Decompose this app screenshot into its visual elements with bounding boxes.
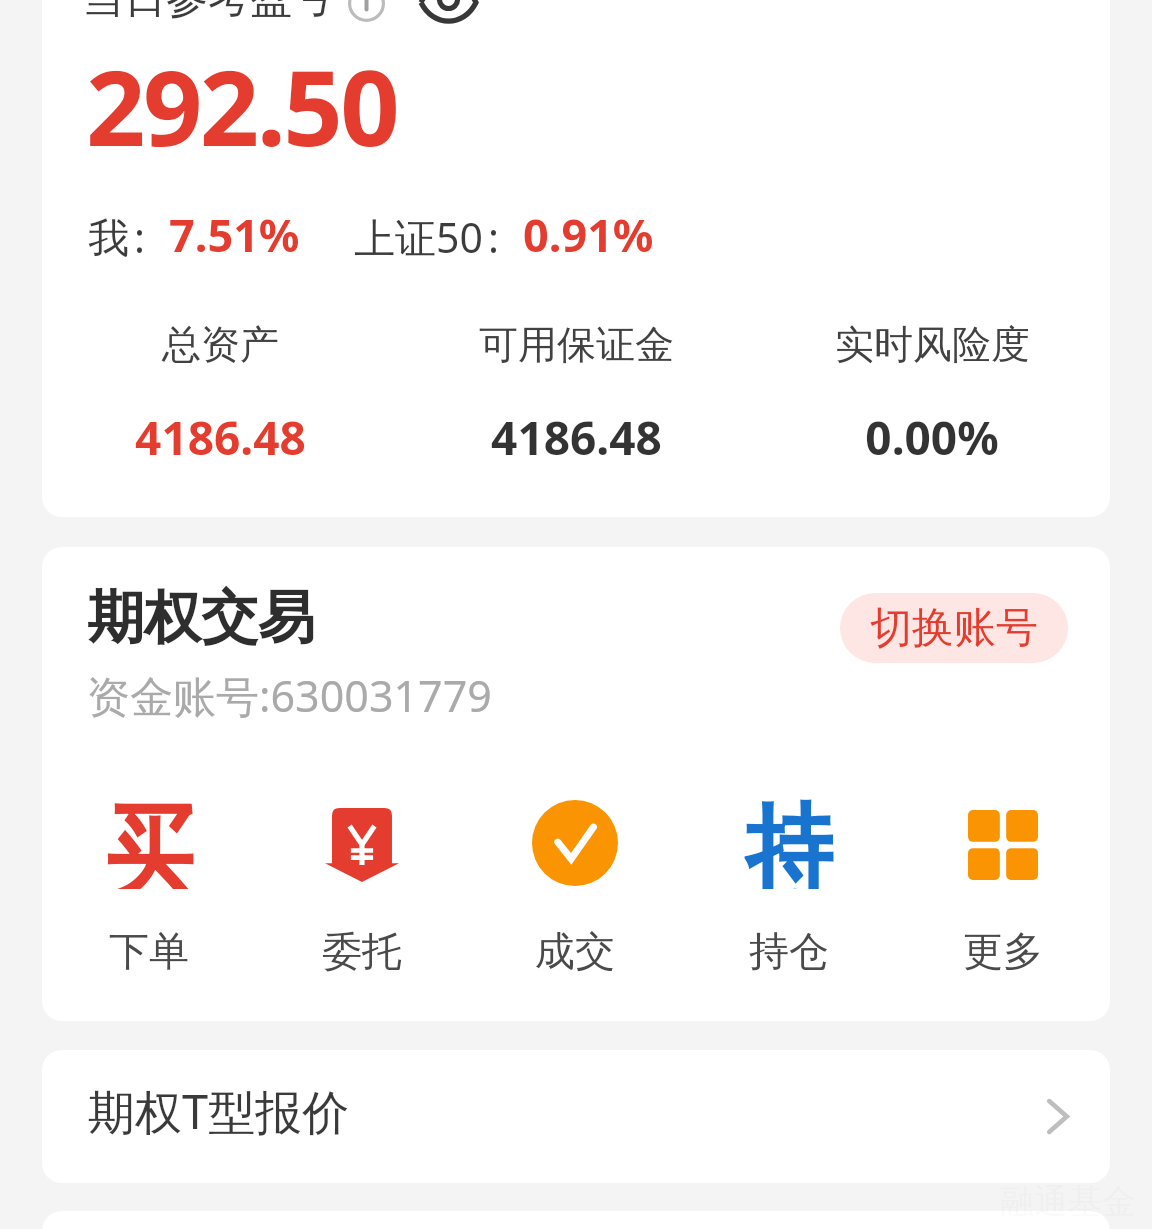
staticText: 总资产	[162, 320, 279, 369]
staticText: 下单	[109, 926, 189, 976]
staticText: 0.00%	[865, 406, 999, 469]
button[interactable]: Info	[336, 0, 397, 34]
button[interactable]: 切换账号	[840, 593, 1068, 663]
staticText: :	[134, 209, 145, 265]
staticText: 上证50	[354, 209, 483, 265]
button[interactable]: 持	[682, 787, 896, 983]
staticText: 切换账号	[870, 602, 1038, 655]
other: Toggle visibility	[421, 0, 476, 18]
staticText: 4186.48	[135, 406, 306, 469]
button[interactable]: 买	[42, 787, 255, 983]
staticText: 期权交易	[87, 582, 315, 654]
staticText: 可用保证金	[479, 320, 674, 369]
staticText: 4186.48	[491, 406, 662, 469]
button[interactable]: 委托	[255, 787, 468, 983]
staticText: 我	[88, 213, 129, 265]
button[interactable]: Toggle balance visibility	[408, 0, 489, 33]
staticText: 融通基金	[1000, 1180, 1136, 1223]
staticText: 持仓	[749, 926, 829, 976]
staticText: 更多	[963, 926, 1043, 976]
staticText: :	[488, 209, 499, 265]
staticText: 当日参考盈亏	[82, 0, 334, 25]
button[interactable]: 期权T型报价	[42, 1050, 1110, 1183]
staticText: 成交	[535, 926, 615, 976]
staticText: 委托	[322, 926, 402, 976]
staticText: 期权T型报价	[88, 1079, 350, 1143]
other: Info	[348, 0, 385, 22]
staticText: 资金账号:630031779	[87, 666, 492, 725]
staticText: 7.51%	[169, 204, 300, 265]
staticText: 买	[104, 789, 193, 889]
staticText: 0.91%	[523, 204, 654, 265]
staticText: 实时风险度	[835, 320, 1030, 369]
button[interactable]: 更多	[896, 787, 1110, 983]
staticText: 持	[744, 789, 833, 889]
button[interactable]: 成交	[468, 787, 682, 983]
staticText: 292.50	[86, 35, 398, 177]
